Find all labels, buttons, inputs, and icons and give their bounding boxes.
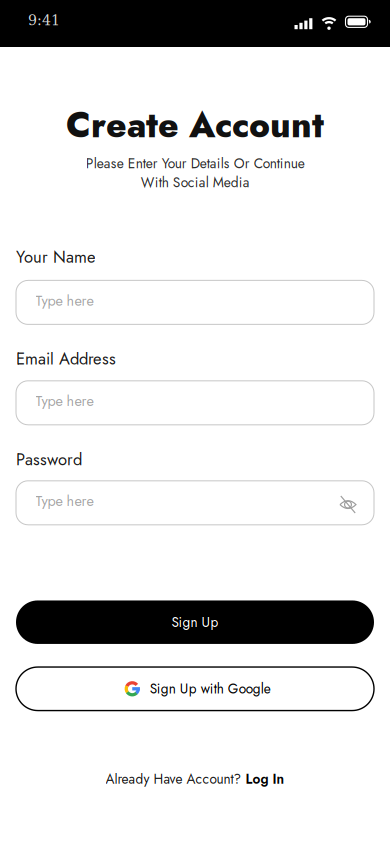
staticText: Already Have Account? xyxy=(105,769,241,789)
button[interactable]: Show password xyxy=(338,494,358,514)
staticText: Create Account xyxy=(66,100,324,150)
staticText: Sign Up xyxy=(171,612,218,632)
staticText: Type here xyxy=(35,290,93,311)
button[interactable]: Your Name xyxy=(16,280,374,324)
staticText: Type here xyxy=(35,491,93,511)
staticText: Sign Up with Google xyxy=(150,679,271,699)
button[interactable]: Password xyxy=(16,481,374,525)
staticText: Type here xyxy=(35,391,93,411)
staticText: Password xyxy=(16,447,82,471)
staticText: 9:41 xyxy=(28,12,60,29)
staticText: Please Enter Your Details Or Continue Wi… xyxy=(85,153,304,192)
staticText: Your Name xyxy=(16,245,96,269)
button[interactable]: Sign Up xyxy=(16,600,374,644)
staticText: Log In xyxy=(245,769,284,789)
button[interactable]: Sign Up with Google xyxy=(16,667,374,710)
button[interactable]: Email Address xyxy=(16,381,374,425)
staticText: Email Address xyxy=(16,347,116,371)
button[interactable]: Already Have Account? xyxy=(105,769,284,789)
